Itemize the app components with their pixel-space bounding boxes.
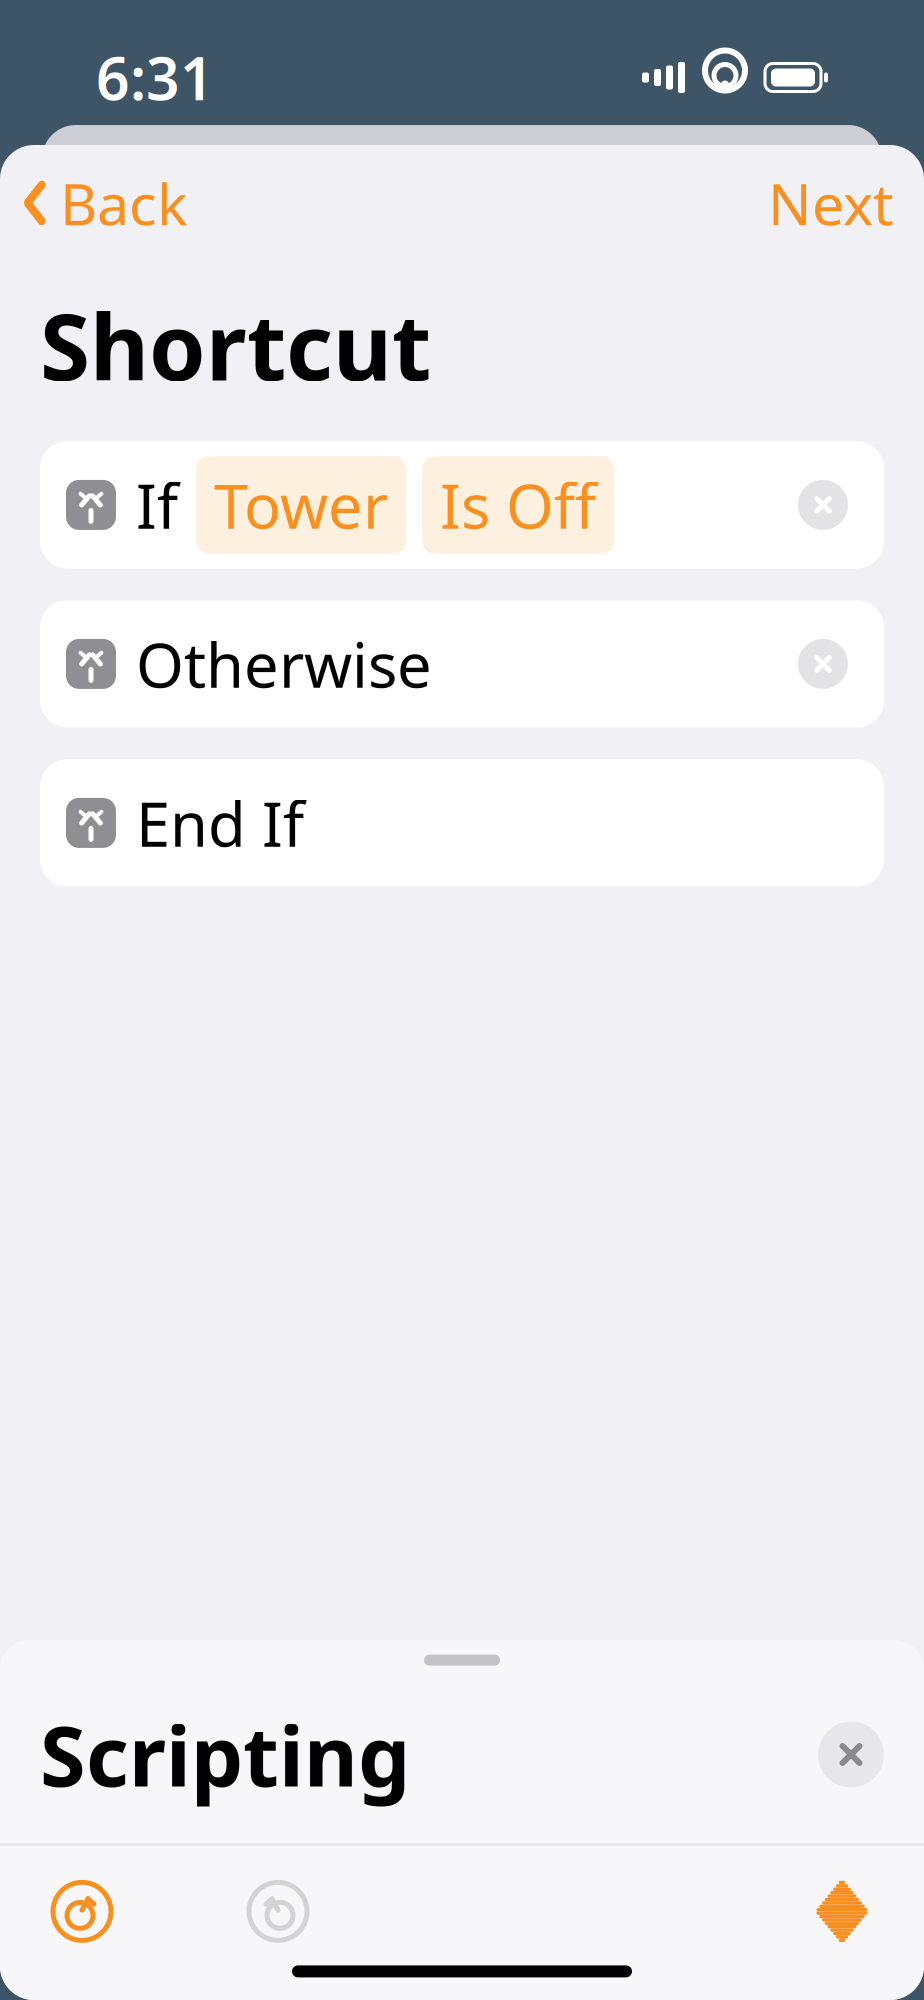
button[interactable]: Close	[818, 1721, 884, 1787]
staticText: Back	[60, 165, 188, 241]
button[interactable]: Back	[0, 151, 188, 255]
staticText: Scripting	[40, 1700, 410, 1809]
button[interactable]: End If	[40, 759, 884, 886]
staticText: End If	[136, 782, 304, 864]
button[interactable]: Next	[768, 151, 924, 255]
staticText: Tower	[214, 464, 388, 546]
button[interactable]: Redo	[232, 1865, 324, 1957]
staticText: If	[136, 464, 178, 546]
staticText: 6:31	[96, 38, 214, 116]
button[interactable]: Remove action	[798, 480, 848, 530]
staticText: Is Off	[440, 464, 596, 546]
staticText: Shortcut	[40, 285, 431, 405]
staticText: Otherwise	[136, 623, 432, 705]
button[interactable]: Remove action	[798, 639, 848, 689]
button[interactable]: Undo	[36, 1865, 128, 1957]
button[interactable]: If	[40, 441, 884, 568]
staticText: Next	[768, 165, 894, 241]
button[interactable]: Otherwise	[40, 600, 884, 727]
button[interactable]: Run shortcut	[796, 1865, 888, 1957]
